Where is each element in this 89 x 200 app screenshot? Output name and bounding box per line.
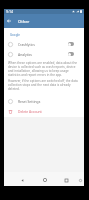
button[interactable]: More options — [76, 173, 85, 187]
button[interactable]: Navigate up — [4, 14, 14, 28]
staticText: Crashlytics — [18, 42, 35, 47]
button[interactable]: Delete Account — [4, 106, 84, 116]
button[interactable]: Crashlytics — [4, 39, 84, 49]
staticText: 9:14 — [6, 9, 14, 14]
staticText: When these options are enabled, data abo… — [8, 61, 79, 77]
button[interactable]: Home — [39, 173, 50, 187]
button[interactable]: Back — [17, 173, 28, 187]
button[interactable]: Analytics — [4, 49, 84, 59]
button[interactable]: Recent apps — [61, 173, 72, 187]
button[interactable]: Reset Settings — [4, 96, 84, 106]
staticText: Google — [10, 33, 20, 37]
staticText: Other — [18, 19, 30, 24]
staticText: Delete Account — [18, 109, 42, 114]
staticText: Analytics — [18, 52, 32, 57]
staticText: However, if the options are switched off… — [8, 79, 79, 91]
staticText: Reset Settings — [18, 99, 41, 104]
